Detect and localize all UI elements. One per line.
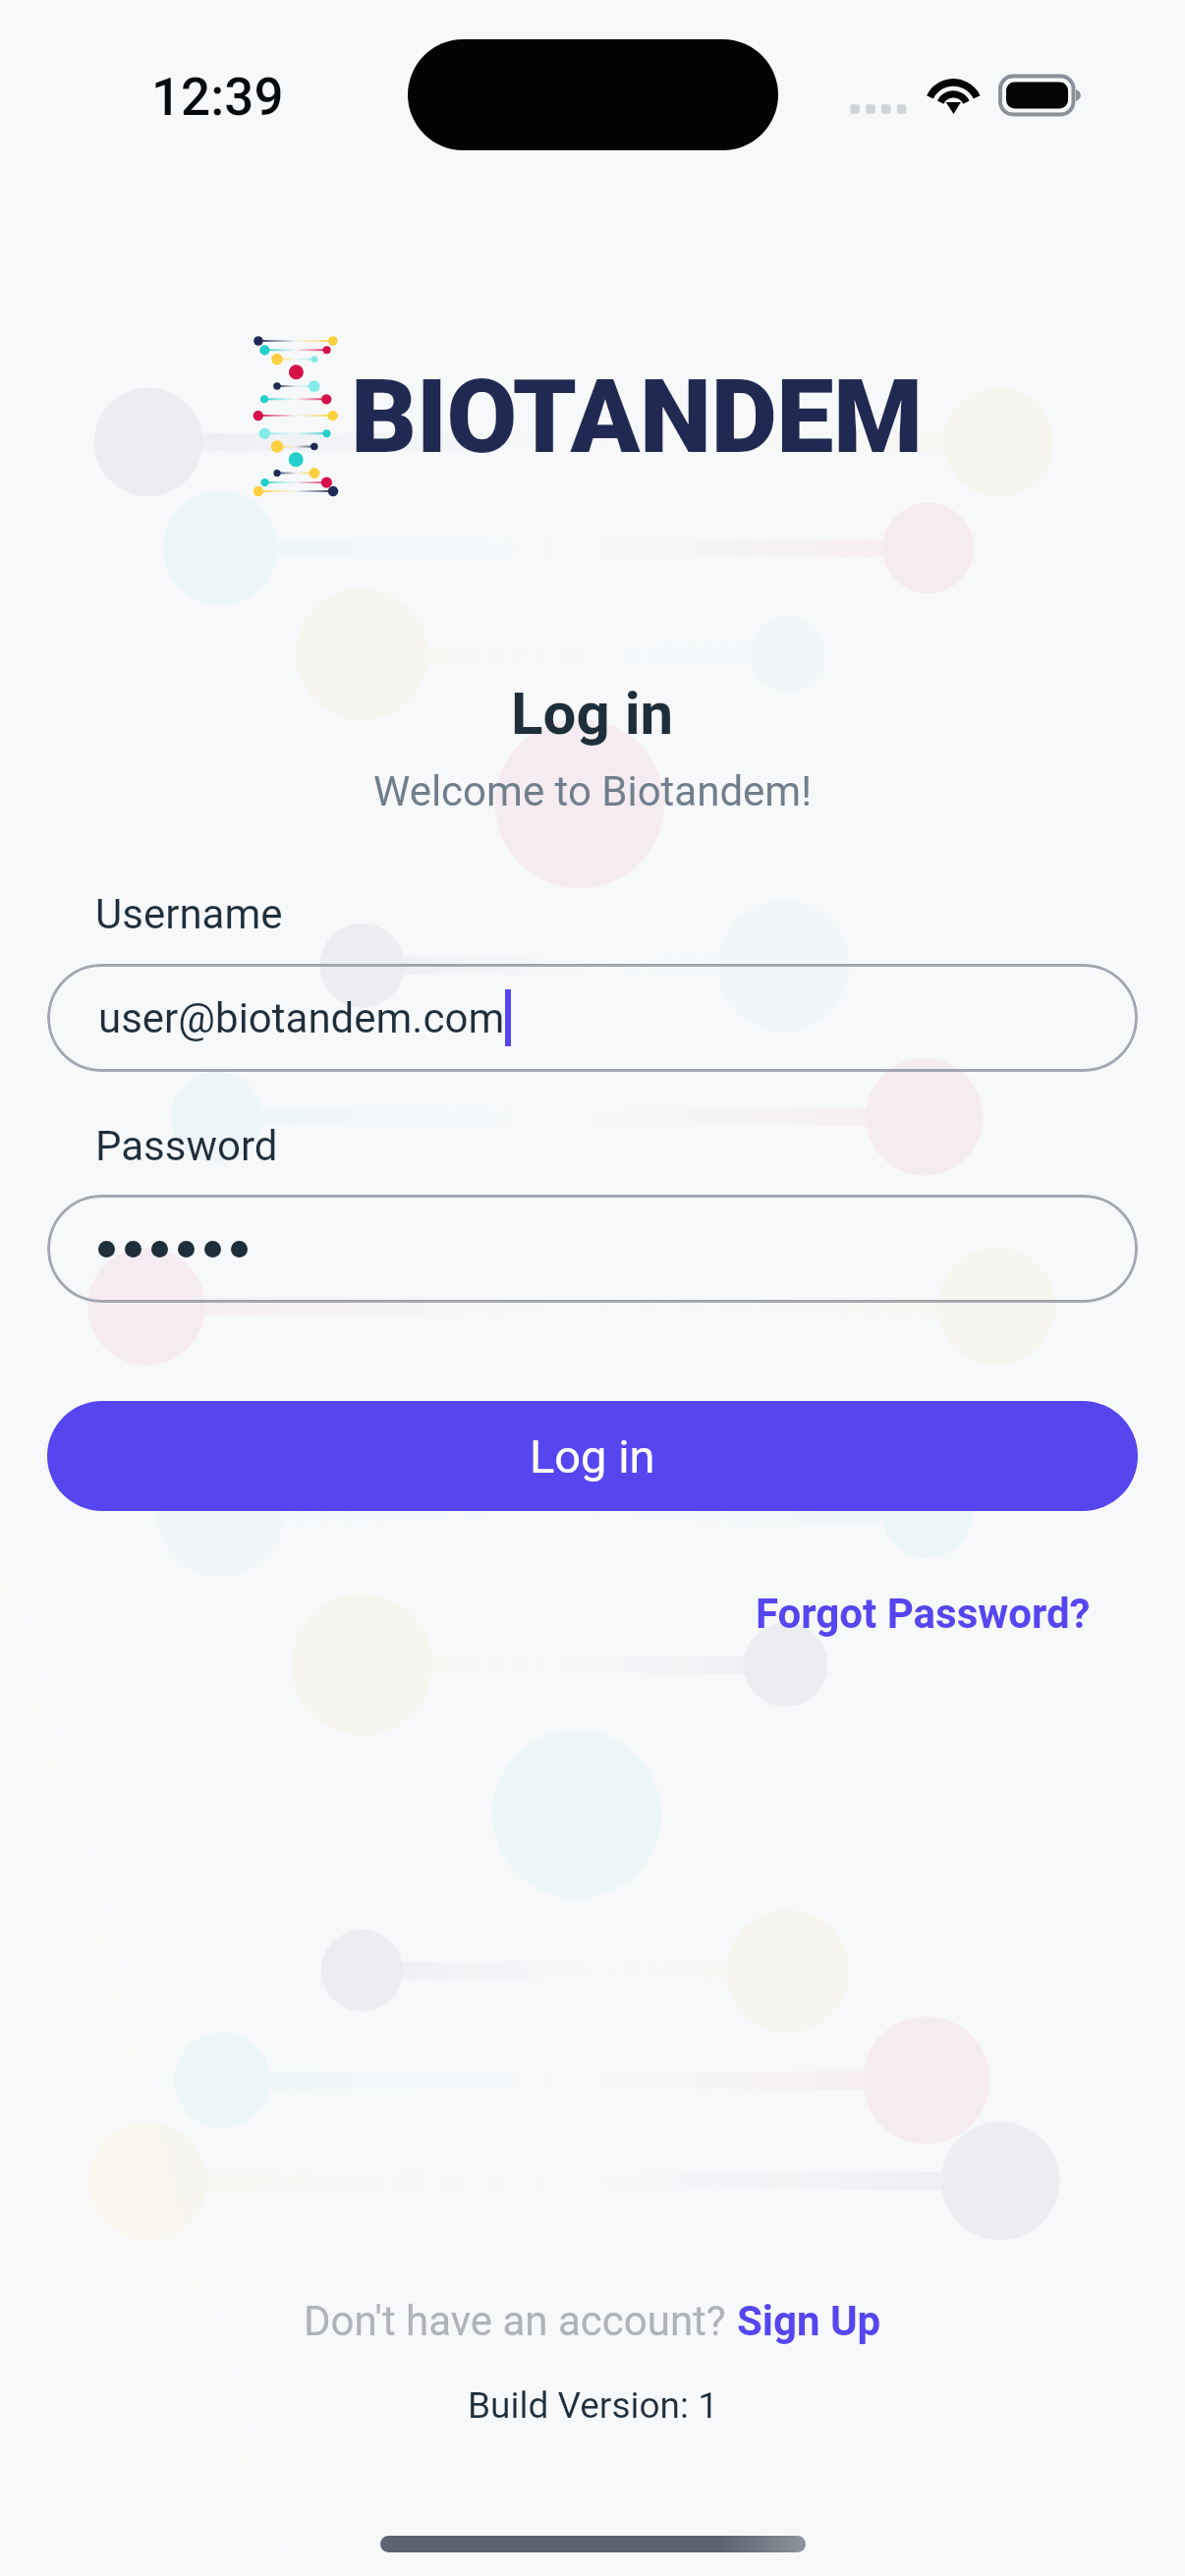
staticText: 12:39 [151, 67, 284, 128]
button[interactable]: Sign Up [737, 2297, 881, 2345]
other: Biotandem DNA logo [254, 341, 338, 491]
staticText: Don't have an account? [304, 2297, 737, 2345]
staticText: Welcome to Biotandem! [373, 767, 813, 815]
staticText: Sign Up [737, 2297, 881, 2345]
staticText: user@biotandem.com [98, 994, 505, 1042]
staticText: Forgot Password? [756, 1590, 1091, 1638]
staticText: Build Version: 1 [468, 2384, 718, 2427]
button[interactable]: Username field [47, 964, 1138, 1072]
button[interactable]: Log in [47, 1401, 1138, 1511]
staticText: Password [95, 1122, 278, 1170]
staticText: BIOTANDEM [351, 358, 923, 477]
staticText: Log in [511, 679, 674, 748]
staticText: Log in [530, 1429, 655, 1484]
staticText: Username [95, 890, 283, 938]
button[interactable]: Password field [47, 1195, 1138, 1303]
button[interactable]: Forgot Password? [736, 1576, 1110, 1652]
